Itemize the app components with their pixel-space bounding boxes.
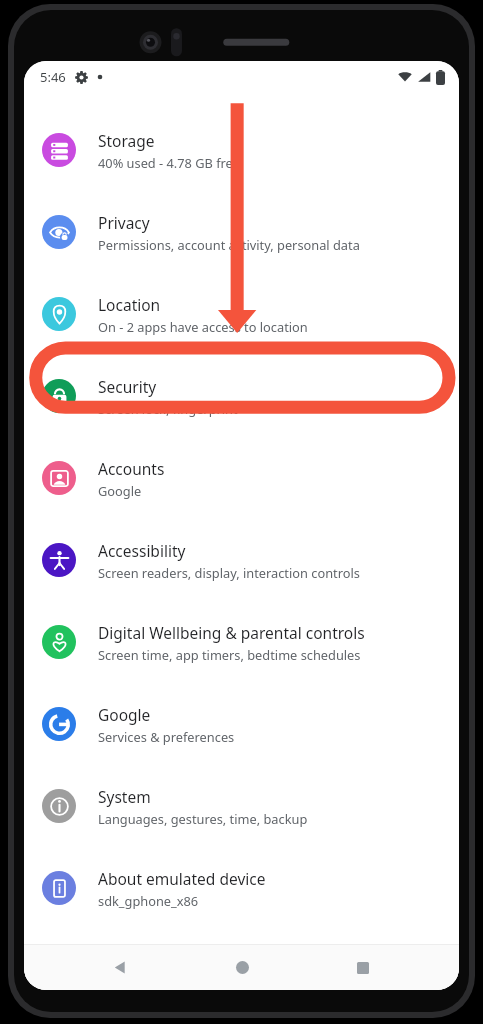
staticText: Accounts bbox=[98, 458, 165, 479]
button[interactable]: Home bbox=[216, 945, 268, 990]
button[interactable]: Recent apps bbox=[337, 945, 389, 990]
staticText: Privacy bbox=[98, 212, 150, 233]
staticText: Location bbox=[98, 294, 161, 315]
staticText: On - 2 apps have access to location bbox=[98, 318, 308, 335]
staticText: Screen time, app timers, bedtime schedul… bbox=[98, 646, 361, 663]
staticText: System bbox=[98, 786, 151, 807]
staticText: Services & preferences bbox=[98, 728, 235, 745]
staticText: Permissions, account activity, personal … bbox=[98, 236, 360, 253]
button[interactable]: Google bbox=[24, 683, 459, 765]
staticText: About emulated device bbox=[98, 868, 266, 889]
staticText: Storage bbox=[98, 130, 155, 151]
button[interactable]: Back bbox=[94, 945, 146, 990]
button[interactable]: Accounts bbox=[24, 437, 459, 519]
staticText: sdk_gphone_x86 bbox=[98, 892, 199, 909]
staticText: Screen lock, fingerprint bbox=[98, 400, 238, 417]
button[interactable]: About emulated device bbox=[24, 847, 459, 929]
button[interactable]: Storage bbox=[24, 109, 459, 191]
staticText: 5:46 bbox=[40, 68, 66, 86]
staticText: Screen readers, display, interaction con… bbox=[98, 564, 360, 581]
staticText: Digital Wellbeing & parental controls bbox=[98, 622, 365, 643]
button[interactable]: Privacy bbox=[24, 191, 459, 273]
staticText: Languages, gestures, time, backup bbox=[98, 810, 308, 827]
button[interactable]: System bbox=[24, 765, 459, 847]
staticText: Security bbox=[98, 376, 157, 397]
staticText: Google bbox=[98, 482, 142, 499]
button[interactable]: Digital Wellbeing & parental controls bbox=[24, 601, 459, 683]
button[interactable]: Security bbox=[24, 355, 459, 437]
button[interactable]: Accessibility bbox=[24, 519, 459, 601]
staticText: 40% used - 4.78 GB free bbox=[98, 154, 241, 171]
staticText: Accessibility bbox=[98, 540, 186, 561]
staticText: Google bbox=[98, 704, 151, 725]
button[interactable]: Location bbox=[24, 273, 459, 355]
